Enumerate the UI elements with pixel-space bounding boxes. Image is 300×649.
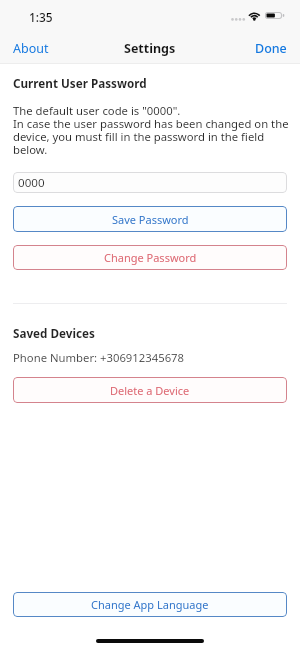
button[interactable]: Save Password: [13, 206, 287, 232]
staticText: Done: [255, 40, 287, 57]
staticText: About: [13, 40, 49, 57]
staticText: Change Password: [104, 250, 197, 265]
staticText: Save Password: [112, 212, 189, 227]
button[interactable]: Change Password: [13, 245, 287, 270]
button[interactable]: Done: [242, 34, 300, 63]
staticText: Settings: [124, 40, 176, 57]
staticText: 0000: [18, 175, 45, 191]
staticText: Current User Password: [13, 75, 147, 91]
staticText: Change App Language: [91, 597, 209, 612]
staticText: Saved Devices: [13, 325, 95, 341]
staticText: Delete a Device: [110, 383, 190, 398]
staticText: Phone Number: +306912345678: [13, 350, 185, 365]
button[interactable]: About: [0, 34, 62, 63]
button[interactable]: Delete a Device: [13, 377, 287, 403]
button[interactable]: Change App Language: [13, 592, 287, 617]
staticText: 1:35: [29, 9, 53, 25]
staticText: The default user code is "0000". In case…: [13, 103, 300, 158]
button[interactable]: 0000: [13, 172, 287, 193]
